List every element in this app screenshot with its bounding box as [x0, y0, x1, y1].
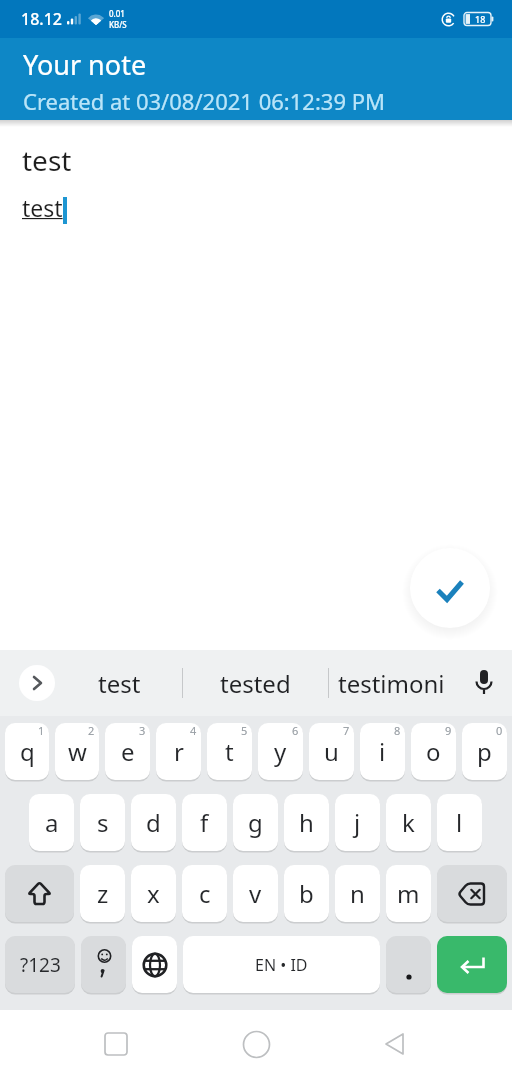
- button[interactable]: d: [131, 794, 176, 851]
- button[interactable]: h: [284, 794, 329, 851]
- staticText: 0: [496, 723, 503, 738]
- staticText: l: [456, 806, 463, 839]
- staticText: 18: [475, 13, 486, 25]
- button[interactable]: v: [233, 865, 278, 922]
- staticText: 9: [445, 723, 452, 738]
- staticText: tested: [220, 667, 291, 700]
- staticText: z: [97, 877, 109, 910]
- staticText: a: [45, 806, 59, 839]
- button[interactable]: tested: [183, 650, 328, 716]
- button[interactable]: n: [335, 865, 380, 922]
- staticText: b: [299, 877, 314, 910]
- staticText: c: [199, 877, 211, 910]
- button[interactable]: o: [411, 723, 456, 780]
- staticText: test: [98, 667, 141, 700]
- button[interactable]: [132, 936, 177, 993]
- button[interactable]: [437, 936, 507, 993]
- staticText: h: [299, 806, 314, 839]
- button[interactable]: f: [182, 794, 227, 851]
- staticText: 6: [292, 723, 299, 738]
- button[interactable]: e: [105, 723, 150, 780]
- button[interactable]: p: [462, 723, 507, 780]
- button[interactable]: testimoni: [329, 650, 454, 716]
- staticText: k: [402, 806, 415, 839]
- staticText: 2: [88, 723, 95, 738]
- button[interactable]: i: [360, 723, 405, 780]
- staticText: w: [68, 735, 87, 768]
- staticText: KB/S: [109, 19, 127, 30]
- staticText: q: [20, 735, 35, 768]
- staticText: v: [249, 877, 262, 910]
- staticText: m: [397, 877, 420, 910]
- staticText: g: [248, 806, 263, 839]
- staticText: y: [274, 735, 287, 768]
- staticText: 18.12: [21, 8, 62, 30]
- button[interactable]: a: [29, 794, 74, 851]
- button[interactable]: s: [80, 794, 125, 851]
- button[interactable]: r: [156, 723, 201, 780]
- button[interactable]: l: [437, 794, 482, 851]
- button[interactable]: [236, 1024, 276, 1064]
- staticText: p: [477, 735, 492, 768]
- button[interactable]: k: [386, 794, 431, 851]
- staticText: EN • ID: [255, 954, 308, 976]
- button[interactable]: m: [386, 865, 431, 922]
- staticText: r: [174, 735, 184, 768]
- button[interactable]: b: [284, 865, 329, 922]
- staticText: test: [22, 141, 72, 179]
- button[interactable]: u: [309, 723, 354, 780]
- button[interactable]: c: [182, 865, 227, 922]
- button[interactable]: ?123: [5, 936, 75, 993]
- staticText: f: [200, 806, 209, 839]
- button[interactable]: q: [5, 723, 49, 780]
- button[interactable]: x: [131, 865, 176, 922]
- staticText: 5: [241, 723, 248, 738]
- staticText: x: [147, 877, 160, 910]
- staticText: 4: [190, 723, 197, 738]
- staticText: ?123: [20, 952, 61, 978]
- button[interactable]: [375, 1024, 415, 1064]
- staticText: Created at 03/08/2021 06:12:39 PM: [23, 86, 385, 116]
- staticText: d: [146, 806, 161, 839]
- button[interactable]: EN • ID: [183, 936, 380, 993]
- button[interactable]: [468, 668, 500, 700]
- button[interactable]: [437, 865, 507, 922]
- button[interactable]: [96, 1024, 136, 1064]
- staticText: testimoni: [338, 667, 445, 700]
- staticText: t: [225, 735, 234, 768]
- staticText: 3: [139, 723, 146, 738]
- button[interactable]: w: [55, 723, 99, 780]
- button[interactable]: [5, 865, 74, 922]
- staticText: j: [354, 806, 361, 839]
- staticText: Your note: [23, 46, 147, 83]
- staticText: 1: [38, 723, 45, 738]
- button[interactable]: [386, 936, 431, 993]
- staticText: test: [22, 192, 63, 223]
- staticText: s: [97, 806, 109, 839]
- staticText: 8: [394, 723, 401, 738]
- staticText: o: [426, 735, 441, 768]
- button[interactable]: z: [80, 865, 125, 922]
- button[interactable]: y: [258, 723, 303, 780]
- button[interactable]: j: [335, 794, 380, 851]
- staticText: e: [121, 735, 135, 768]
- button[interactable]: test: [56, 650, 182, 716]
- button[interactable]: [19, 665, 55, 701]
- staticText: u: [324, 735, 339, 768]
- staticText: 7: [343, 723, 350, 738]
- button[interactable]: t: [207, 723, 252, 780]
- staticText: 0.01: [109, 8, 125, 19]
- button[interactable]: [410, 548, 490, 628]
- staticText: i: [379, 735, 386, 768]
- button[interactable]: [81, 936, 126, 993]
- staticText: n: [350, 877, 365, 910]
- button[interactable]: g: [233, 794, 278, 851]
